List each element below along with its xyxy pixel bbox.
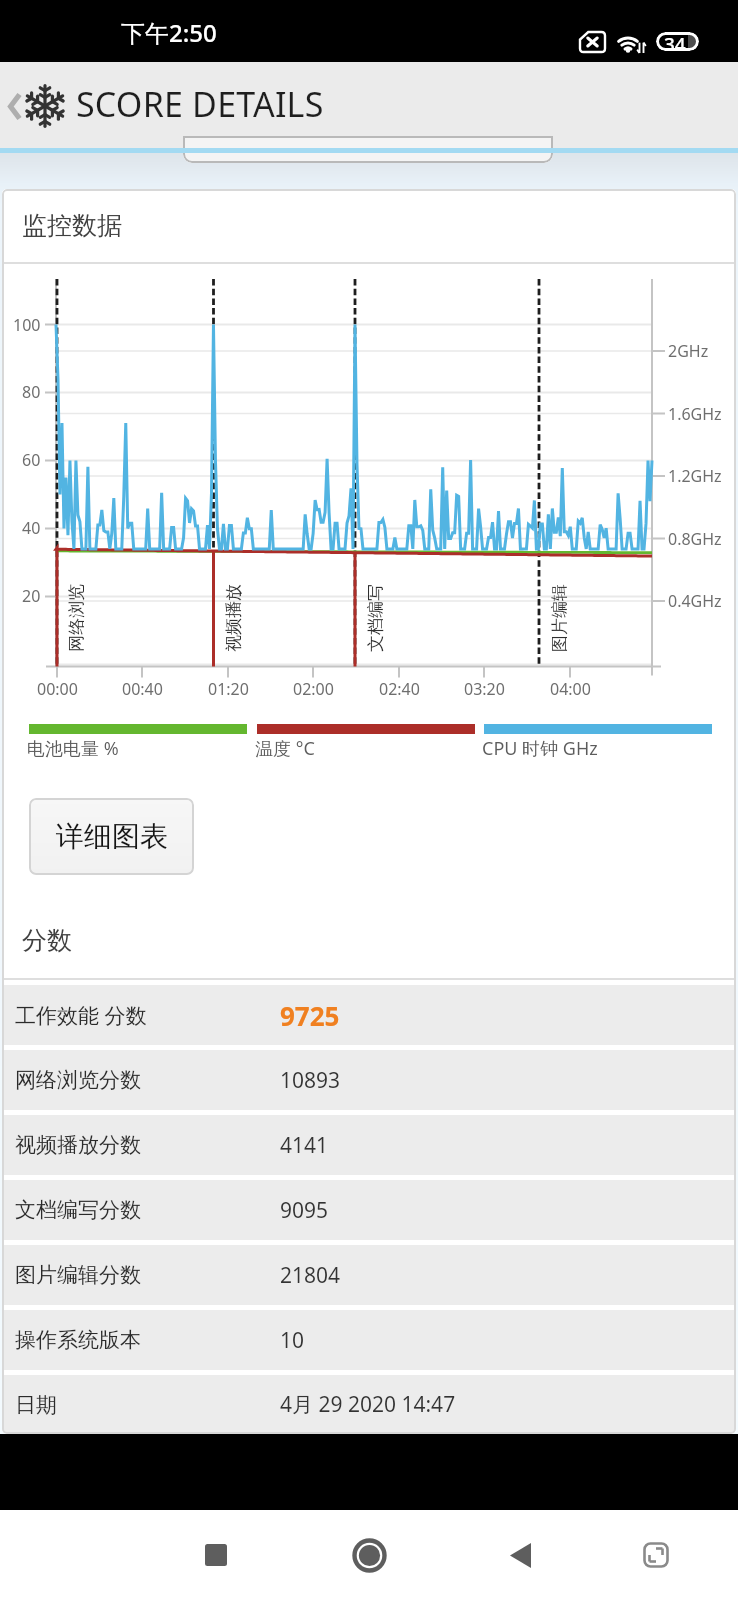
staticText: 100 <box>13 314 41 336</box>
staticText: 详细图表 <box>56 819 168 854</box>
staticText: 日期 <box>15 1392 57 1418</box>
staticText: 工作效能 分数 <box>15 1001 147 1030</box>
staticText: 1.2GHz <box>668 465 722 487</box>
staticText: 10893 <box>280 1066 341 1095</box>
staticText: 温度 °C <box>255 736 315 761</box>
staticText: 分数 <box>22 925 72 956</box>
staticText: CPU 时钟 GHz <box>482 736 598 761</box>
staticText: 图片编辑 <box>549 584 570 652</box>
staticText: 网络浏览分数 <box>15 1067 141 1093</box>
staticText: 图片编辑分数 <box>15 1262 141 1288</box>
staticText: 网络浏览 <box>66 584 87 652</box>
staticText: 文档编写 <box>365 584 386 652</box>
staticText: 0.4GHz <box>668 590 722 612</box>
staticText: SCORE DETAILS <box>76 81 324 127</box>
button[interactable]: Home <box>325 1511 413 1599</box>
button[interactable]: 文档编写分数 <box>2 1180 736 1240</box>
staticText: 9725 <box>280 998 340 1033</box>
staticText: 21804 <box>280 1261 341 1290</box>
staticText: 34 <box>664 32 686 51</box>
staticText: 00:40 <box>122 678 163 700</box>
staticText: 01:20 <box>208 678 249 700</box>
staticText: 下午2:50 <box>121 16 217 49</box>
button[interactable]: Back <box>476 1511 564 1599</box>
staticText: 20 <box>22 585 41 607</box>
button[interactable]: Split screen <box>612 1511 700 1599</box>
staticText: 04:00 <box>550 678 591 700</box>
staticText: 40 <box>22 517 41 539</box>
staticText: 80 <box>22 381 41 403</box>
staticText: 00:00 <box>37 678 78 700</box>
staticText: 02:00 <box>293 678 334 700</box>
staticText: 文档编写分数 <box>15 1197 141 1223</box>
button[interactable]: 工作效能 分数 <box>2 985 736 1045</box>
staticText: 视频播放分数 <box>15 1132 141 1158</box>
button[interactable]: Recent apps <box>172 1511 260 1599</box>
button[interactable]: 详细图表 <box>29 798 194 875</box>
staticText: 监控数据 <box>22 210 122 241</box>
staticText: 电池电量 % <box>27 736 119 761</box>
staticText: 4141 <box>280 1131 329 1160</box>
staticText: 10 <box>280 1326 305 1355</box>
staticText: 4月 29 2020 14:47 <box>280 1390 456 1419</box>
staticText: 视频播放 <box>223 584 244 652</box>
button[interactable]: SCORE DETAILS <box>0 62 738 148</box>
staticText: 02:40 <box>379 678 420 700</box>
staticText: 60 <box>22 449 41 471</box>
staticText: 1.6GHz <box>668 403 722 425</box>
button[interactable]: 操作系统版本 <box>2 1310 736 1370</box>
button[interactable]: 网络浏览分数 <box>2 1050 736 1110</box>
staticText: 操作系统版本 <box>15 1327 141 1353</box>
button[interactable]: 日期 <box>2 1375 736 1434</box>
staticText: 03:20 <box>464 678 505 700</box>
staticText: 0.8GHz <box>668 528 722 550</box>
button[interactable]: 图片编辑分数 <box>2 1245 736 1305</box>
staticText: 2GHz <box>668 340 709 362</box>
button[interactable]: 视频播放分数 <box>2 1115 736 1175</box>
staticText: 9095 <box>280 1196 329 1225</box>
